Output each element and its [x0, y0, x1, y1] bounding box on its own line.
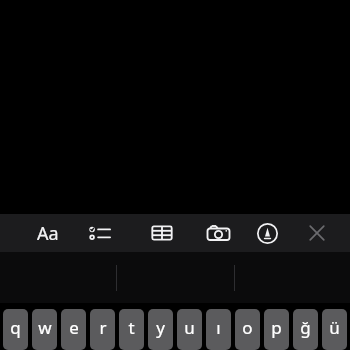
button[interactable]: t — [119, 309, 144, 350]
button[interactable]: u — [177, 309, 202, 350]
button[interactable]: Markup — [248, 214, 286, 252]
staticText: y — [156, 316, 165, 339]
staticText: r — [99, 316, 107, 339]
staticText: w — [38, 316, 52, 339]
button[interactable]: ü — [322, 309, 347, 350]
staticText: p — [271, 316, 282, 339]
staticText: ü — [329, 316, 340, 339]
button[interactable]: e — [61, 309, 86, 350]
button[interactable]: p — [264, 309, 289, 350]
staticText: Aa — [37, 221, 59, 246]
button[interactable]: r — [90, 309, 115, 350]
button[interactable]: Text format — [29, 214, 67, 252]
staticText: t — [128, 316, 135, 339]
button[interactable]: ğ — [293, 309, 318, 350]
button[interactable]: Checklist — [81, 214, 119, 252]
staticText: ğ — [300, 316, 311, 339]
button[interactable]: Table — [143, 214, 181, 252]
button[interactable]: w — [32, 309, 57, 350]
staticText: q — [10, 316, 21, 339]
button[interactable]: ı — [206, 309, 231, 350]
button[interactable]: Camera — [199, 214, 237, 252]
button[interactable]: q — [3, 309, 28, 350]
staticText: u — [184, 316, 195, 339]
button[interactable]: y — [148, 309, 173, 350]
staticText: e — [69, 316, 79, 339]
staticText: ı — [216, 316, 221, 339]
button[interactable]: Close — [298, 214, 336, 252]
button[interactable]: o — [235, 309, 260, 350]
staticText: o — [242, 316, 253, 339]
